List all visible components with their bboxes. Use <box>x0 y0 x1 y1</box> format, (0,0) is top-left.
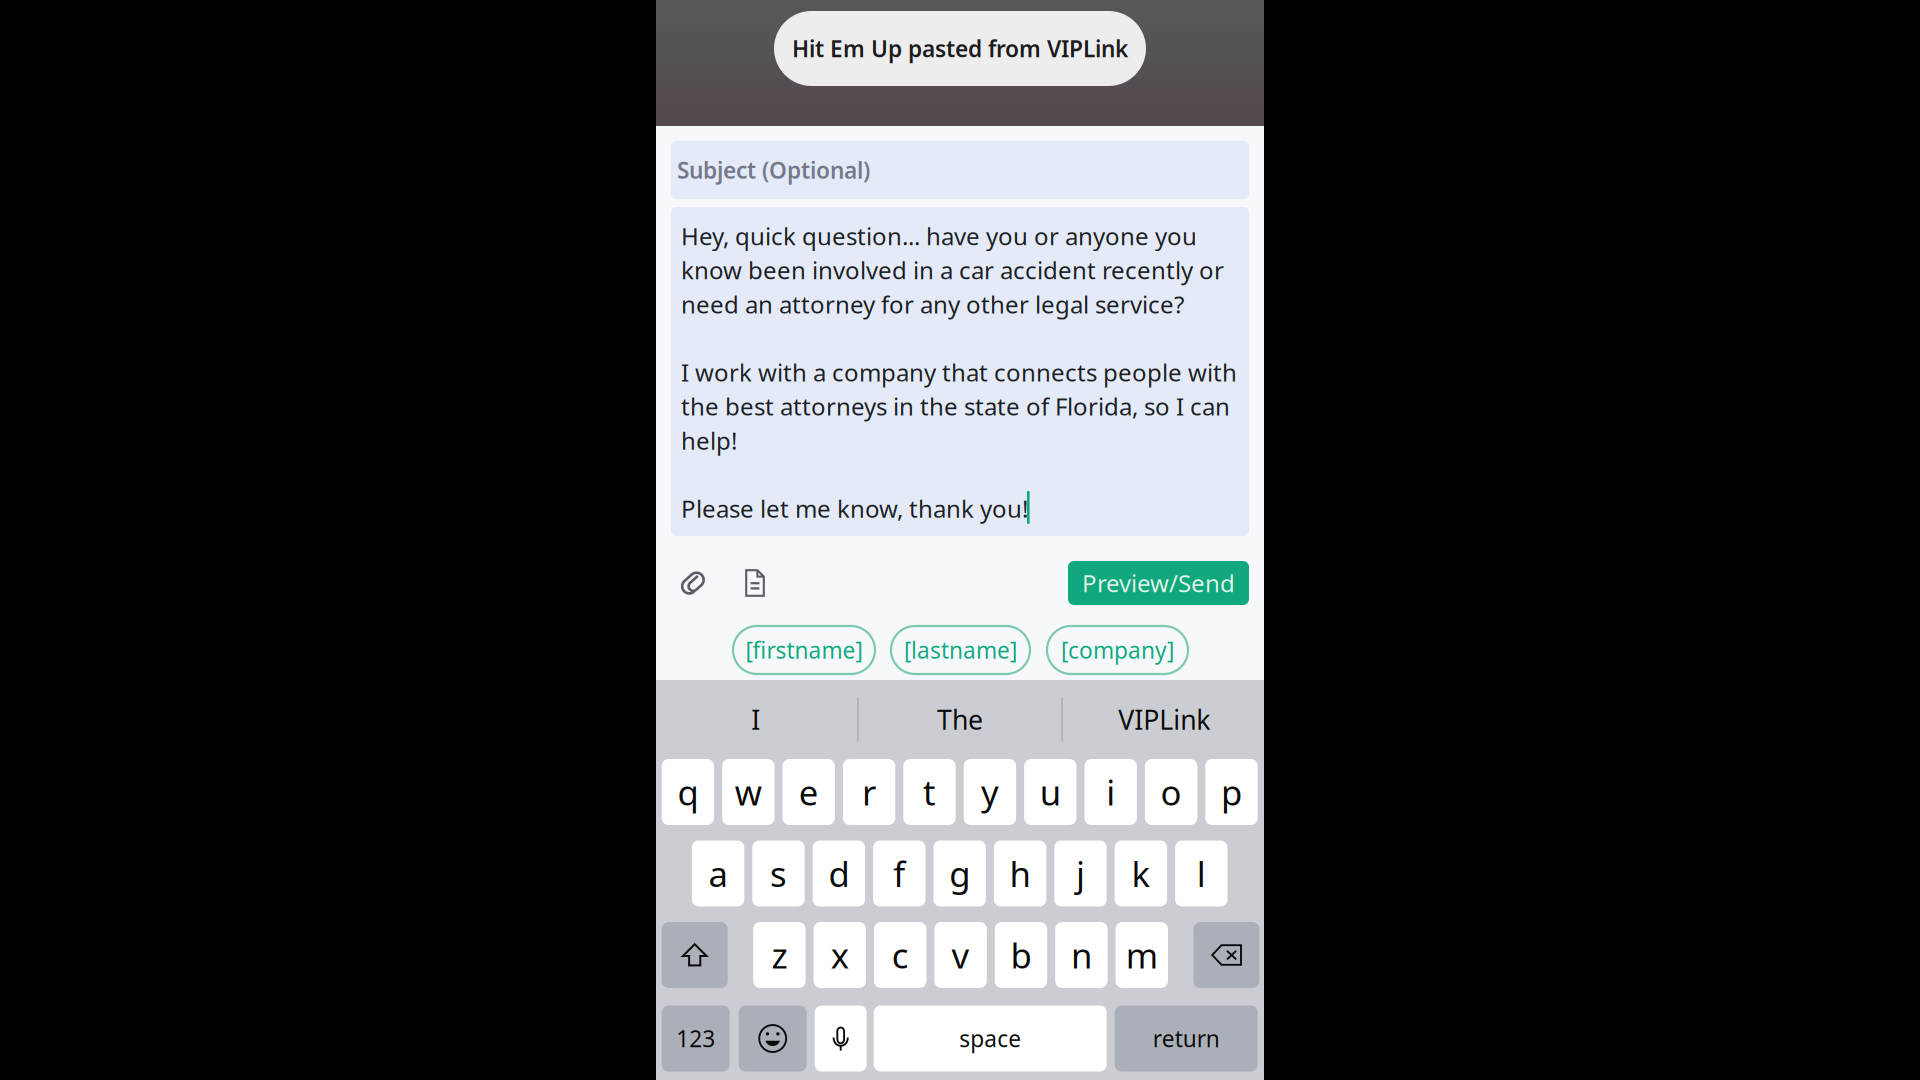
button[interactable]: f <box>873 840 925 906</box>
staticText: w <box>735 769 762 815</box>
button[interactable]: Dictate <box>815 1005 867 1071</box>
button[interactable]: [lastname] <box>891 626 1030 674</box>
button[interactable]: The <box>859 680 1061 759</box>
button[interactable]: Emoji <box>739 1005 807 1071</box>
staticText: t <box>923 769 936 815</box>
staticText: p <box>1221 769 1242 815</box>
staticText: v <box>952 932 970 978</box>
staticText: Hey, quick question... have you or anyon… <box>681 220 1237 524</box>
staticText: I <box>751 702 760 737</box>
button[interactable]: g <box>933 840 986 906</box>
button[interactable]: p <box>1205 759 1258 825</box>
staticText: l <box>1197 850 1206 896</box>
button[interactable]: o <box>1145 759 1197 825</box>
staticText: Subject (Optional) <box>677 155 870 185</box>
staticText: 123 <box>676 1023 715 1053</box>
staticText: o <box>1161 769 1182 815</box>
button[interactable]: k <box>1115 840 1167 906</box>
button[interactable]: h <box>994 840 1046 906</box>
button[interactable]: w <box>722 759 774 825</box>
staticText: g <box>949 850 970 896</box>
button[interactable]: n <box>1055 922 1108 988</box>
button[interactable]: i <box>1084 759 1137 825</box>
staticText: Hit Em Up pasted from VIPLink <box>792 33 1128 63</box>
button[interactable]: VIPLink <box>1063 680 1265 759</box>
button[interactable]: Hit Em Up pasted from VIPLink <box>774 11 1146 86</box>
staticText: return <box>1153 1023 1220 1053</box>
button[interactable]: x <box>814 922 866 988</box>
button[interactable]: q <box>662 759 714 825</box>
staticText: h <box>1010 850 1031 896</box>
staticText: q <box>677 769 698 815</box>
button[interactable]: Attach file <box>671 561 715 605</box>
staticText: [lastname] <box>904 635 1017 665</box>
button[interactable]: Shift <box>662 922 728 988</box>
staticText: e <box>799 769 819 815</box>
button[interactable]: v <box>934 922 987 988</box>
button[interactable]: space <box>874 1005 1107 1071</box>
staticText: [company] <box>1061 635 1174 665</box>
staticText: space <box>959 1023 1021 1053</box>
button[interactable]: Hey, quick question... have you or anyon… <box>671 207 1249 536</box>
button[interactable]: Preview/Send <box>1068 561 1249 605</box>
staticText: y <box>981 769 999 815</box>
button[interactable]: b <box>995 922 1047 988</box>
button[interactable]: u <box>1024 759 1076 825</box>
button[interactable]: Insert template <box>735 561 775 605</box>
button[interactable]: I <box>654 680 857 759</box>
staticText: k <box>1131 850 1150 896</box>
staticText: Preview/Send <box>1082 567 1235 599</box>
staticText: a <box>709 850 728 896</box>
staticText: u <box>1040 769 1061 815</box>
button[interactable]: [company] <box>1047 626 1188 674</box>
button[interactable]: Delete <box>1193 922 1259 988</box>
staticText: m <box>1126 932 1158 978</box>
button[interactable]: d <box>813 840 865 906</box>
staticText: z <box>771 932 787 978</box>
staticText: The <box>937 702 983 737</box>
staticText: x <box>831 932 849 978</box>
staticText: [firstname] <box>745 635 862 665</box>
button[interactable]: return <box>1115 1005 1258 1071</box>
button[interactable]: l <box>1175 840 1227 906</box>
button[interactable]: y <box>964 759 1016 825</box>
staticText: s <box>770 850 787 896</box>
button[interactable]: m <box>1116 922 1168 988</box>
staticText: b <box>1010 932 1031 978</box>
button[interactable]: j <box>1054 840 1107 906</box>
staticText: c <box>892 932 909 978</box>
staticText: n <box>1071 932 1092 978</box>
button[interactable]: t <box>903 759 956 825</box>
button[interactable]: a <box>692 840 744 906</box>
button[interactable]: Subject (Optional) <box>671 141 1249 199</box>
button[interactable]: Numbers <box>662 1005 730 1071</box>
button[interactable]: e <box>782 759 835 825</box>
staticText: j <box>1076 850 1085 896</box>
staticText: i <box>1106 769 1115 815</box>
staticText: d <box>828 850 849 896</box>
button[interactable]: c <box>874 922 926 988</box>
staticText: f <box>893 850 905 896</box>
button[interactable]: z <box>753 922 806 988</box>
button[interactable]: [firstname] <box>733 626 875 674</box>
staticText: VIPLink <box>1118 702 1210 737</box>
button[interactable]: r <box>843 759 895 825</box>
button[interactable]: s <box>752 840 805 906</box>
staticText: r <box>862 769 876 815</box>
